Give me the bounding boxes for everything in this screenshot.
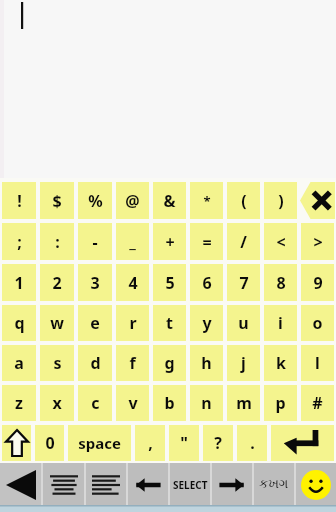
button[interactable]: & [153,182,186,219]
button[interactable]: Align 1 [43,463,84,506]
button[interactable]: o [301,305,334,341]
button[interactable]: 1 [2,264,36,301]
button[interactable]: < [264,223,297,260]
staticText: : [55,231,60,253]
staticText: - [92,231,98,253]
button[interactable]: : [40,223,74,260]
button[interactable]: 6 [190,264,223,301]
button[interactable]: ; [2,223,36,260]
button[interactable]: 5 [153,264,186,301]
button[interactable]: c [78,385,112,421]
staticText: 3 [90,272,100,294]
staticText: c [91,392,100,414]
button[interactable]: e [78,305,112,341]
button[interactable]: ! [2,182,36,219]
button[interactable]: v [116,385,149,421]
staticText: 9 [313,272,323,294]
button[interactable]: y [190,305,223,341]
button[interactable]: + [153,223,186,260]
button[interactable]: 2 [40,264,74,301]
button[interactable]: Emoji [296,463,336,506]
button[interactable]: p [264,385,297,421]
staticText: j [241,352,246,374]
staticText: 5 [165,272,175,294]
button[interactable]: ? [203,425,233,461]
button[interactable]: w [40,305,74,341]
button[interactable]: 4 [116,264,149,301]
button[interactable] [0,0,336,178]
staticText: b [164,392,175,414]
button[interactable]: = [190,223,223,260]
button[interactable]: s [40,345,74,381]
staticText: n [201,392,212,414]
staticText: $ [52,190,62,212]
staticText: x [52,392,62,414]
button[interactable]: g [153,345,186,381]
staticText: a [14,352,24,374]
button[interactable]: f [116,345,149,381]
staticText: v [128,392,138,414]
button[interactable]: u [227,305,260,341]
button[interactable]: Align 2 [86,463,126,506]
button[interactable]: * [190,182,223,219]
button[interactable]: n [190,385,223,421]
button[interactable]: b [153,385,186,421]
button[interactable]: q [2,305,36,341]
button[interactable]: Next [212,463,252,506]
button[interactable]: Back [0,463,41,506]
button[interactable]: 8 [264,264,297,301]
button[interactable]: _ [116,223,149,260]
button[interactable]: z [2,385,36,421]
button[interactable]: k [264,345,297,381]
button[interactable]: 0 [35,425,64,461]
staticText: z [15,392,23,414]
button[interactable]: # [301,385,334,421]
button[interactable]: Previous [128,463,168,506]
button[interactable]: d [78,345,112,381]
staticText: 1 [14,272,24,294]
button[interactable]: x [40,385,74,421]
staticText: ( [241,190,247,212]
button[interactable]: $ [40,182,74,219]
button[interactable]: l [301,345,334,381]
button[interactable]: i [264,305,297,341]
button[interactable]: ( [227,182,260,219]
staticText: d [90,352,101,374]
button[interactable]: Shift [2,425,31,461]
button[interactable]: SELECT [170,463,210,506]
button[interactable]: j [227,345,260,381]
button[interactable]: Enter [271,425,334,461]
button[interactable]: " [169,425,199,461]
button[interactable]: % [78,182,112,219]
staticText: s [53,352,62,374]
button[interactable]: @ [116,182,149,219]
staticText: u [238,312,249,334]
button[interactable]: , [135,425,165,461]
staticText: ! [17,190,22,212]
button[interactable]: ) [264,182,297,219]
button[interactable]: / [227,223,260,260]
button[interactable]: m [227,385,260,421]
button[interactable]: r [116,305,149,341]
button[interactable]: a [2,345,36,381]
button[interactable]: t [153,305,186,341]
staticText: 0 [45,432,55,454]
button[interactable]: Backspace [300,182,335,219]
staticText: w [50,312,64,334]
button[interactable]: કખગ [254,463,294,506]
staticText: f [129,352,136,374]
button[interactable]: . [237,425,267,461]
button[interactable]: > [301,223,334,260]
staticText: < [276,231,286,253]
staticText: @ [125,190,140,212]
button[interactable]: h [190,345,223,381]
button[interactable]: 7 [227,264,260,301]
button[interactable]: space [68,425,131,461]
button[interactable]: 3 [78,264,112,301]
button[interactable]: - [78,223,112,260]
staticText: g [164,352,175,374]
staticText: r [129,312,137,334]
staticText: + [165,231,175,253]
staticText: t [166,312,173,334]
button[interactable]: 9 [301,264,334,301]
